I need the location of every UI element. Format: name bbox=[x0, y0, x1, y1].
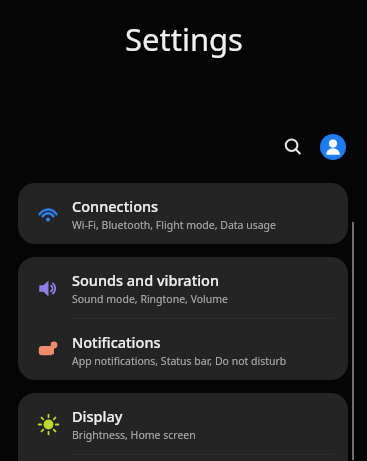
staticText: Connections bbox=[72, 196, 159, 216]
staticText: Settings bbox=[125, 18, 243, 60]
button[interactable]: Connections bbox=[18, 183, 348, 244]
button[interactable]: Sounds and vibration bbox=[18, 257, 348, 318]
staticText: Sounds and vibration bbox=[72, 270, 220, 290]
staticText: Brightness, Home screen bbox=[72, 428, 196, 442]
staticText: Notifications bbox=[72, 332, 161, 352]
button[interactable]: Account bbox=[315, 129, 351, 165]
staticText: Wi-Fi, Bluetooth, Flight mode, Data usag… bbox=[72, 218, 277, 232]
button[interactable]: Search bbox=[275, 129, 311, 165]
staticText: Display bbox=[72, 406, 123, 426]
button[interactable]: Notifications bbox=[18, 319, 348, 380]
staticText: Sound mode, Ringtone, Volume bbox=[72, 292, 229, 306]
staticText: App notifications, Status bar, Do not di… bbox=[72, 354, 287, 368]
button[interactable]: Display bbox=[18, 393, 348, 454]
